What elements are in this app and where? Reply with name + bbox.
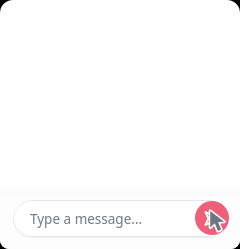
button[interactable]: Send message — [195, 201, 229, 235]
staticText: Type a message... — [30, 210, 143, 228]
button[interactable] — [0, 0, 240, 249]
button[interactable]: Type a message... — [13, 200, 228, 237]
